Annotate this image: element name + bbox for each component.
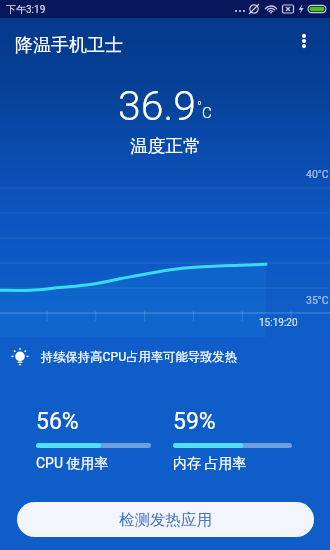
button[interactable]: 检测发热应用 xyxy=(17,502,314,537)
staticText: 40°C xyxy=(306,168,329,180)
staticText: 持续保持高CPU占用率可能导致发热 xyxy=(41,349,237,364)
button[interactable]: More options xyxy=(290,20,330,60)
staticText: 下午3:19 xyxy=(6,3,46,16)
staticText: 检测发热应用 xyxy=(119,510,212,530)
staticText: 降温手机卫士 xyxy=(15,34,123,57)
staticText: 36.9 xyxy=(118,82,197,130)
staticText: 15:19:20 xyxy=(259,317,298,329)
staticText: 内存 占用率 xyxy=(173,455,247,473)
staticText: 温度正常 xyxy=(130,135,201,157)
staticText: 59% xyxy=(173,408,216,435)
staticText: 56% xyxy=(36,408,79,435)
staticText: C xyxy=(202,104,212,122)
staticText: CPU 使用率 xyxy=(36,455,109,473)
staticText: 35°C xyxy=(306,294,329,306)
staticText: ° xyxy=(197,99,202,114)
